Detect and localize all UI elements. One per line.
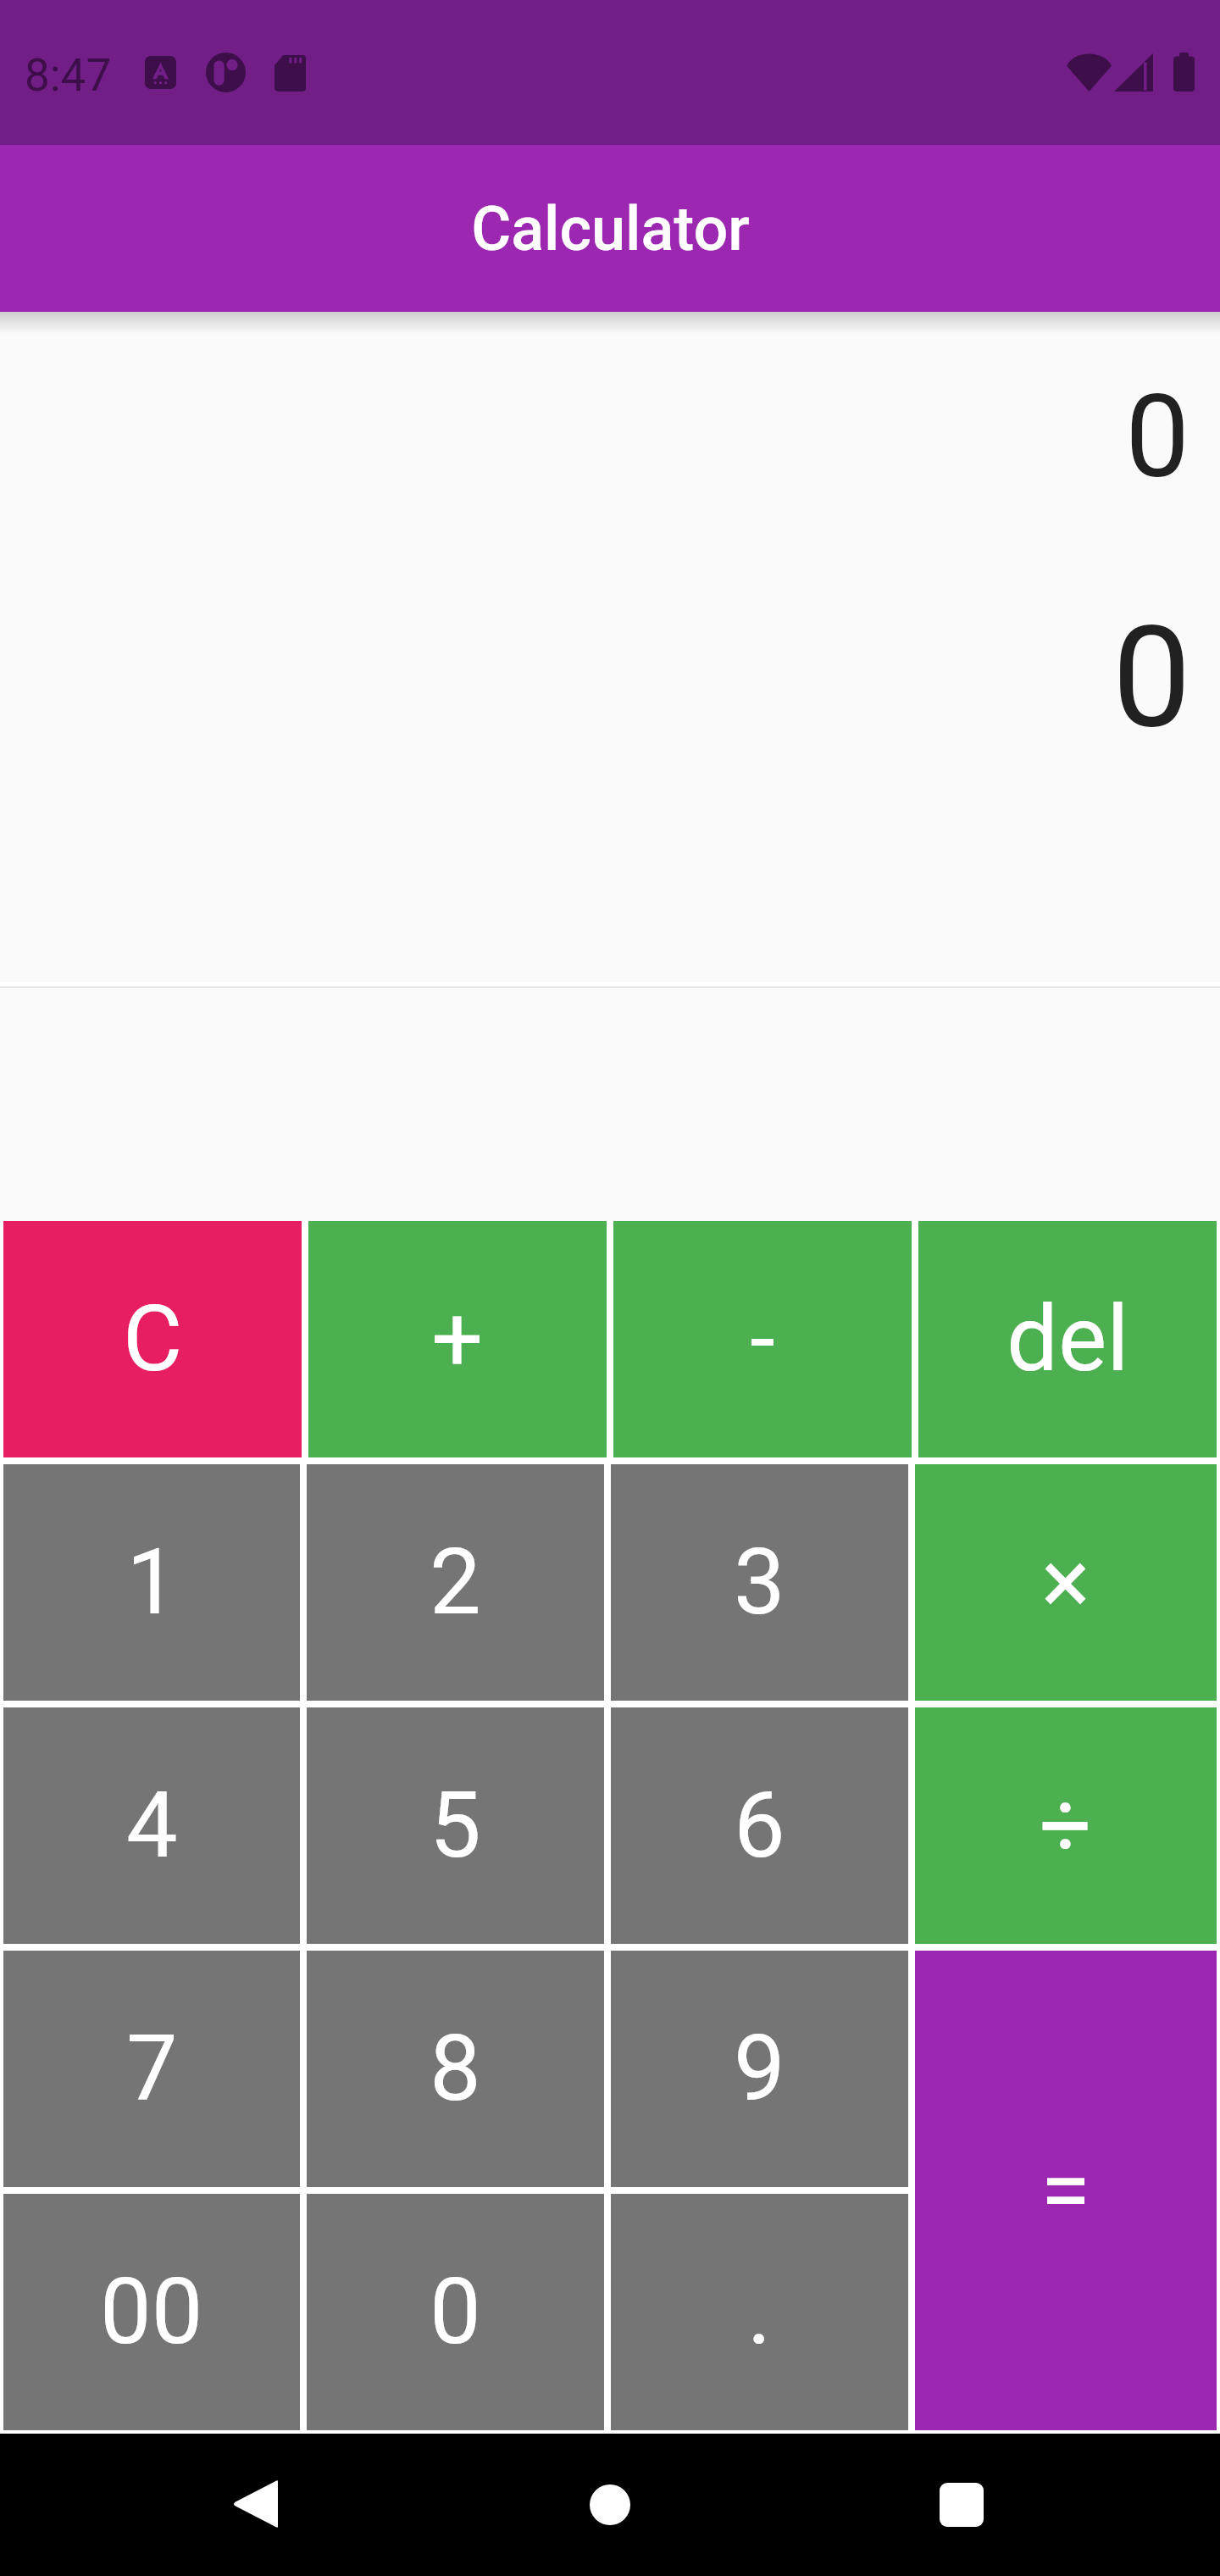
staticText: 1 <box>126 1529 178 1636</box>
button[interactable]: . <box>611 2194 908 2430</box>
button[interactable]: 2 <box>307 1464 604 1701</box>
button[interactable]: C <box>3 1221 302 1457</box>
button[interactable]: del <box>918 1221 1217 1457</box>
staticText: 6 <box>734 1772 785 1879</box>
button[interactable]: × <box>915 1464 1217 1701</box>
staticText: 00 <box>100 2258 203 2366</box>
button[interactable]: 8 <box>307 1951 604 2187</box>
button[interactable]: 9 <box>611 1951 908 2187</box>
staticText: = <box>1040 2137 1091 2245</box>
staticText: 0 <box>0 370 1189 504</box>
staticText: 0 <box>0 595 1191 760</box>
button[interactable]: - <box>613 1221 912 1457</box>
staticText: Calculator <box>471 193 750 264</box>
button[interactable]: 5 <box>307 1707 604 1944</box>
staticText: 8 <box>430 2015 481 2123</box>
button[interactable]: 6 <box>611 1707 908 1944</box>
button[interactable]: 0 <box>307 2194 604 2430</box>
staticText: × <box>1041 1529 1090 1636</box>
button[interactable]: ÷ <box>915 1707 1217 1944</box>
button[interactable]: 00 <box>3 2194 300 2430</box>
button[interactable]: Home <box>551 2446 669 2564</box>
staticText: 2 <box>430 1529 481 1636</box>
staticText: 7 <box>126 2015 178 2123</box>
staticText: 3 <box>734 1529 785 1636</box>
staticText: 8:47 <box>25 49 112 102</box>
staticText: del <box>1006 1285 1129 1393</box>
button[interactable]: + <box>308 1221 607 1457</box>
button[interactable]: 3 <box>611 1464 908 1701</box>
button[interactable]: Recents <box>902 2446 1021 2564</box>
staticText: 0 <box>430 2258 481 2366</box>
staticText: - <box>750 1285 775 1393</box>
staticText: 9 <box>734 2015 785 2123</box>
staticText: C <box>123 1285 183 1393</box>
staticText: 5 <box>430 1772 481 1879</box>
button[interactable]: Back <box>197 2445 315 2563</box>
staticText: 4 <box>126 1772 178 1879</box>
button[interactable]: 4 <box>3 1707 300 1944</box>
staticText: + <box>431 1285 484 1393</box>
button[interactable]: = <box>915 1951 1217 2430</box>
button[interactable]: 7 <box>3 1951 300 2187</box>
button[interactable]: 1 <box>3 1464 300 1701</box>
staticText: . <box>747 2258 772 2366</box>
staticText: ÷ <box>1040 1772 1092 1879</box>
